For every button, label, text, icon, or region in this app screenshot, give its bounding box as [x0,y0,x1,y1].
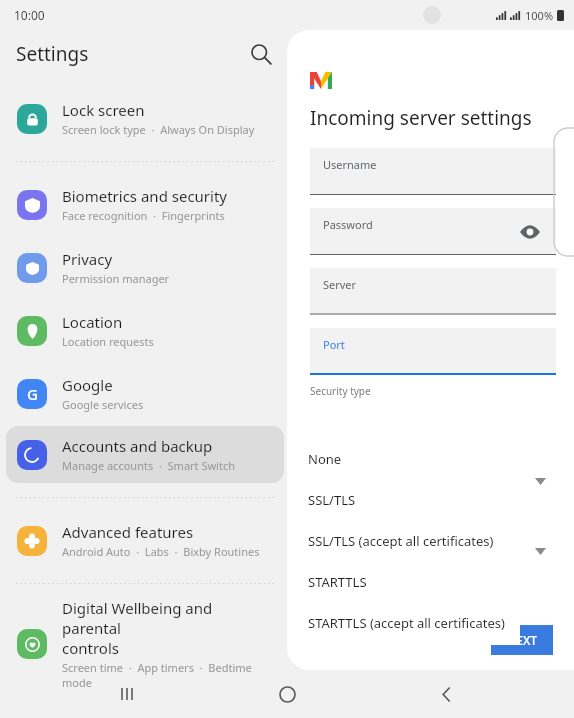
staticText: Screen lock type · Always On Display [62,122,255,137]
button[interactable]: Location [6,302,284,359]
staticText: Biometrics and security [62,186,228,206]
staticText: Username [323,157,377,172]
button[interactable]: None [298,438,520,479]
button[interactable]: Biometrics and security [6,176,284,233]
button[interactable]: Recents [99,670,159,718]
button[interactable]: Accounts and backup [6,426,284,483]
staticText: Privacy [62,249,113,269]
button[interactable]: STARTTLS [298,561,520,602]
staticText: 10:00 [14,7,45,23]
staticText: Screen time · App timers · Bedtime mode [62,660,274,690]
staticText: None [308,450,342,468]
button[interactable]: Search [250,43,272,65]
button[interactable]: SSL/TLS (accept all certificates) [298,520,520,561]
button[interactable]: Advanced features [6,512,284,569]
button[interactable]: Back [416,670,476,718]
staticText: controls [62,638,119,658]
button[interactable]: Home [257,670,317,718]
staticText: Advanced features [62,522,194,542]
button[interactable]: G [6,365,284,422]
staticText: NEXT [507,632,538,648]
staticText: Security type [310,384,371,398]
staticText: SSL/TLS [308,491,356,509]
staticText: Digital Wellbeing and parental [62,598,274,638]
staticText: Port [323,337,345,352]
button[interactable]: STARTTLS (accept all certificates) [298,602,520,643]
button[interactable]: Password [310,208,556,255]
staticText: Location [62,312,123,332]
staticText: Password [323,217,373,232]
staticText: Incoming server settings [310,105,532,131]
staticText: 100% [525,8,554,23]
staticText: Face recognition · Fingerprints [62,208,225,223]
staticText: STARTTLS (accept all certificates) [308,614,505,632]
other: Show password [520,222,540,242]
staticText: Server [323,277,357,292]
staticText: STARTTLS [308,573,367,591]
button[interactable]: SSL/TLS [298,479,520,520]
staticText: Google [62,375,113,395]
button[interactable]: Digital Wellbeing and parental [16,598,274,690]
staticText: Accounts and backup [62,436,213,456]
staticText: Android Auto · Labs · Bixby Routines [62,544,260,559]
staticText: Permission manager [62,271,170,286]
staticText: Google services [62,397,144,412]
button[interactable]: Username [310,148,556,195]
staticText: Lock screen [62,100,145,120]
button[interactable]: Server [310,268,556,315]
staticText: Settings [16,41,89,67]
button[interactable]: Port [310,328,556,375]
staticText: SSL/TLS (accept all certificates) [308,532,494,550]
staticText: G [27,384,38,404]
staticText: Manage accounts · Smart Switch [62,458,235,473]
staticText: Location requests [62,334,154,349]
button[interactable]: Privacy [6,239,284,296]
button[interactable]: NEXT [491,625,553,655]
button[interactable]: Lock screen [6,90,284,147]
